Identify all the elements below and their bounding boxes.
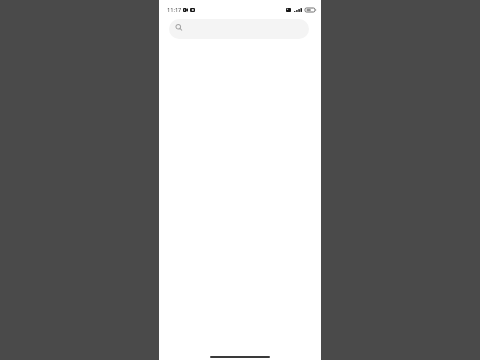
button[interactable]: Search (169, 19, 309, 39)
other: Media notification (190, 8, 195, 12)
other: Mobile signal (294, 8, 302, 12)
other: Battery (305, 8, 316, 12)
staticText: 11:17 (167, 6, 182, 14)
other: Alarm set (286, 8, 291, 12)
other: Video call notification (183, 8, 188, 12)
